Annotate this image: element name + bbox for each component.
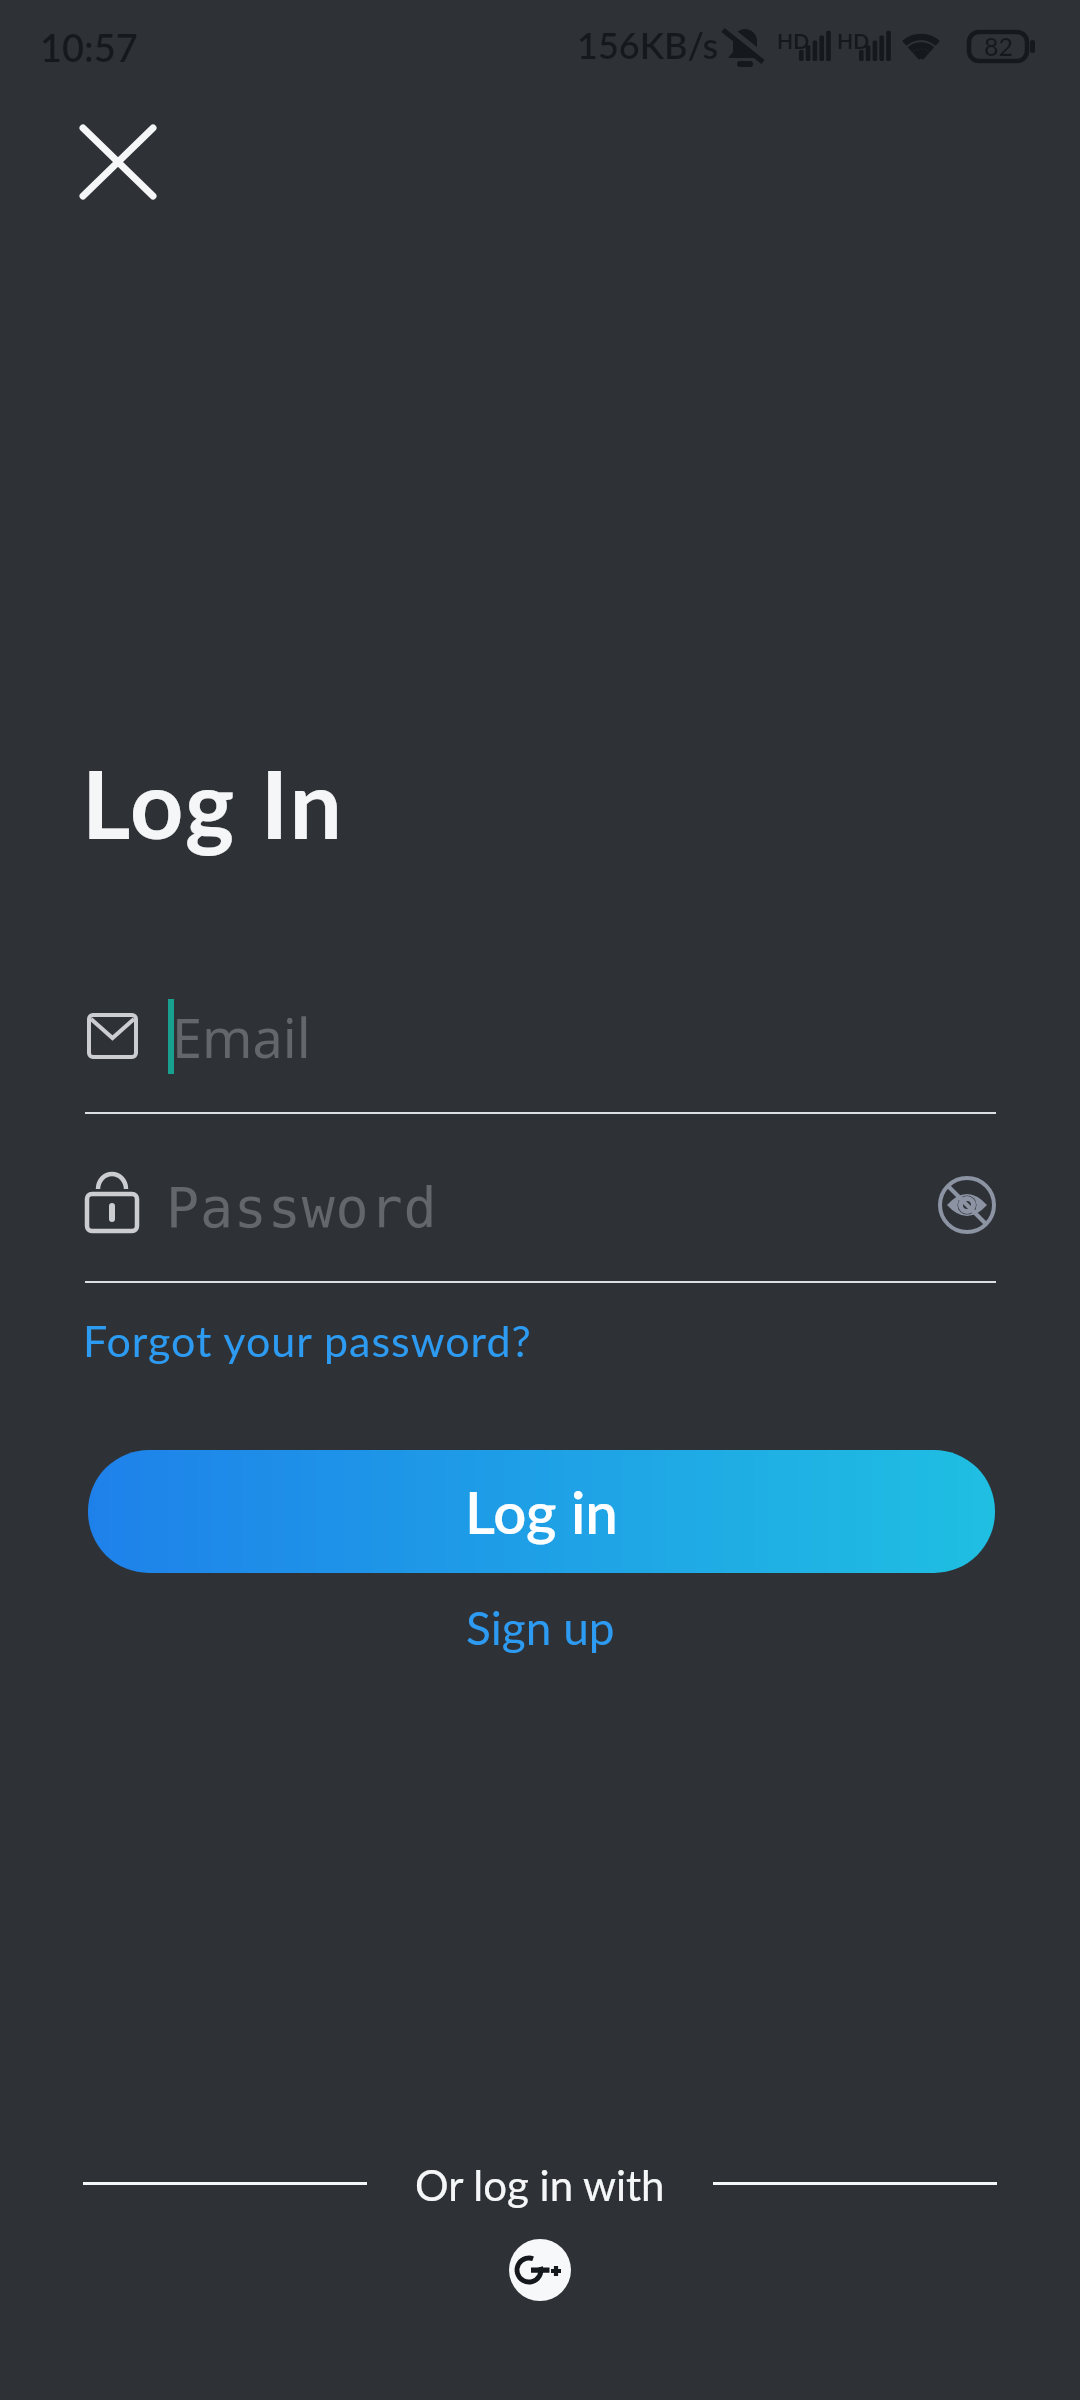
button[interactable]: Sign up: [466, 1600, 615, 1655]
button[interactable]: [85, 985, 996, 1113]
button[interactable]: [509, 2239, 571, 2301]
button[interactable]: [931, 1169, 1003, 1241]
staticText: Log in: [465, 1477, 618, 1547]
staticText: HD: [777, 28, 810, 53]
staticText: Or log in with: [415, 2160, 665, 2210]
staticText: 10:57: [40, 24, 138, 70]
staticText: 156KB/s: [577, 23, 719, 66]
staticText: HD: [837, 28, 870, 53]
button[interactable]: [58, 102, 178, 222]
staticText: Log In: [82, 747, 344, 859]
staticText: 82: [984, 31, 1014, 61]
staticText: Email: [172, 1000, 311, 1074]
button[interactable]: [85, 1155, 996, 1283]
staticText: Sign up: [466, 1600, 615, 1655]
staticText: Forgot your password?: [83, 1315, 532, 1367]
button[interactable]: Log in: [88, 1450, 995, 1573]
button[interactable]: Forgot your password?: [83, 1315, 532, 1367]
staticText: Password: [166, 1176, 438, 1240]
